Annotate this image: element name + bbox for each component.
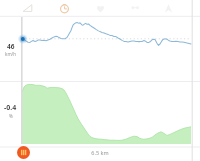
- button[interactable]: Pause: [17, 146, 30, 159]
- button[interactable]: Elevation: [19, 0, 35, 16]
- staticText: 46: [7, 42, 15, 51]
- staticText: -0.4: [4, 103, 17, 113]
- staticText: %: [9, 113, 13, 119]
- button[interactable]: Navigation: [160, 0, 176, 16]
- button[interactable]: Duration: [56, 0, 72, 16]
- staticText: km/h: [5, 51, 17, 57]
- button[interactable]: Heart rate: [92, 0, 108, 16]
- staticText: 6.5 km: [91, 149, 109, 156]
